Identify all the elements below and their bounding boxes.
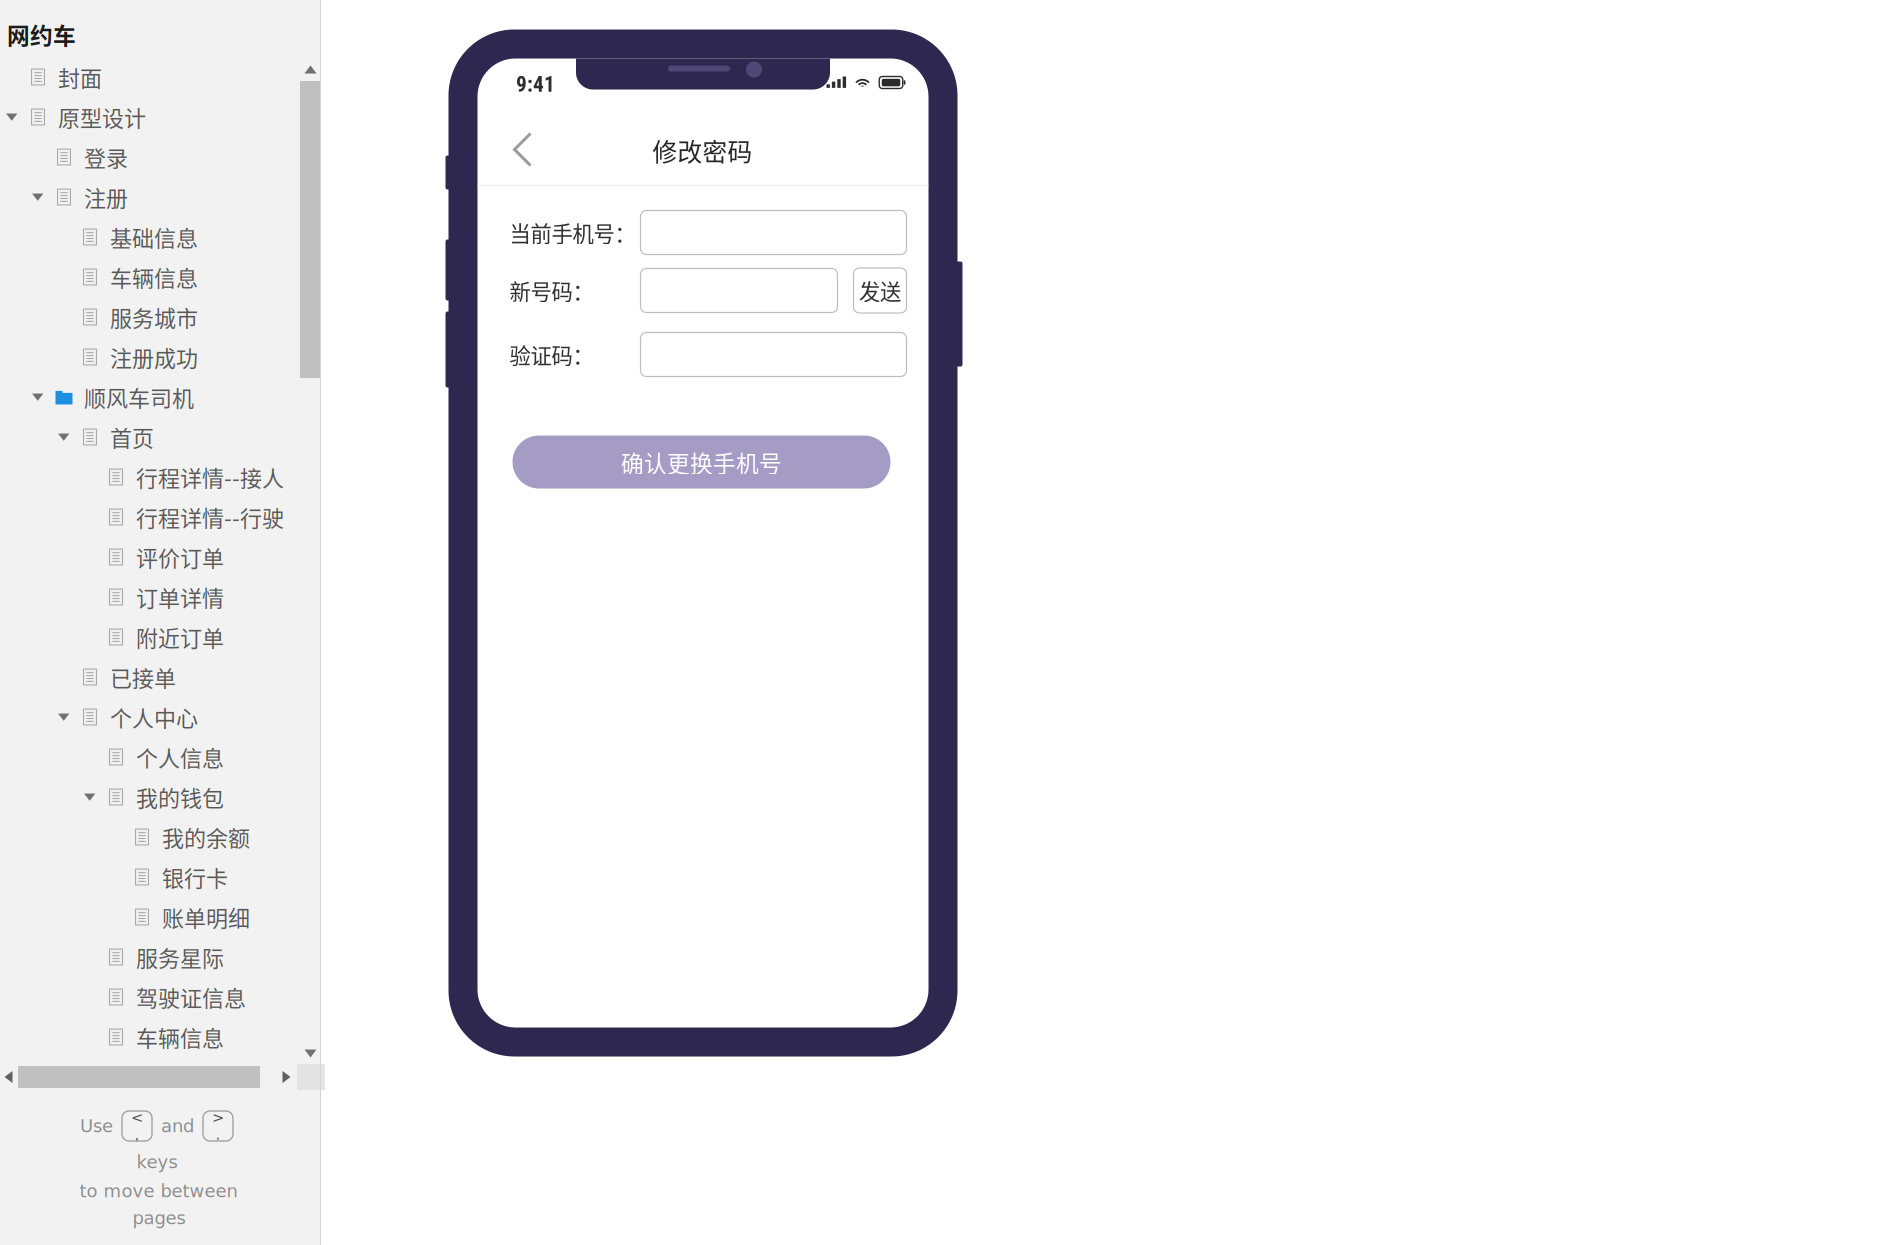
staticText: 我的余额 (162, 821, 250, 853)
staticText: 附近订单 (136, 621, 224, 653)
staticText: to move between (79, 1180, 237, 1201)
staticText: 已接单 (110, 661, 176, 693)
button[interactable]: 原型设计 (0, 97, 296, 137)
staticText: 驾驶证信息 (136, 981, 246, 1013)
staticText: 服务星际 (136, 941, 224, 973)
button[interactable]: 评价订单 (0, 537, 296, 577)
button[interactable]: Back (494, 117, 551, 181)
staticText: 发送 (859, 275, 901, 306)
staticText: 服务城市 (110, 301, 198, 333)
staticText: 注册成功 (110, 341, 198, 373)
staticText: 验证码： (509, 339, 593, 370)
button[interactable]: 我的余额 (0, 817, 296, 857)
button[interactable]: 个人信息 (0, 737, 296, 777)
staticText: 网约车 (7, 18, 76, 51)
button[interactable]: 封面 (0, 57, 296, 97)
button[interactable]: 车辆信息 (0, 257, 296, 297)
button[interactable]: 基础信息 (0, 217, 296, 257)
button[interactable]: 附近订单 (0, 617, 296, 657)
button[interactable]: 注册成功 (0, 337, 296, 377)
staticText: > (212, 1109, 224, 1126)
button[interactable]: 服务星际 (0, 937, 296, 977)
staticText: 车辆信息 (136, 1021, 224, 1053)
staticText: 车辆信息 (110, 261, 198, 293)
staticText: 当前手机号： (509, 217, 635, 248)
staticText: 银行卡 (162, 861, 228, 893)
staticText: 账单明细 (162, 901, 250, 933)
staticText: 登录 (84, 141, 128, 173)
staticText: , (134, 1126, 139, 1143)
staticText: 行程详情--接人 (136, 461, 284, 493)
button[interactable]: Scroll left (0, 1066, 17, 1088)
button[interactable]: 银行卡 (0, 857, 296, 897)
staticText: < (131, 1109, 143, 1126)
button[interactable]: 确认更换手机号 (512, 435, 890, 488)
button[interactable]: 我的钱包 (0, 777, 296, 817)
staticText: 9:41 (516, 72, 555, 97)
button[interactable]: 账单明细 (0, 897, 296, 937)
staticText: 新号码： (509, 275, 593, 306)
button[interactable]: 车辆信息 (0, 1017, 296, 1057)
button[interactable]: 已接单 (0, 657, 296, 697)
button[interactable]: 首页 (0, 417, 296, 457)
button[interactable]: 个人中心 (0, 697, 296, 737)
staticText: 个人中心 (110, 701, 198, 733)
staticText: 基础信息 (110, 221, 198, 253)
button[interactable]: Scroll down (300, 1045, 321, 1062)
staticText: keys (136, 1151, 177, 1172)
button[interactable]: 注册 (0, 177, 296, 217)
button[interactable]: 行程详情--行驶 (0, 497, 296, 537)
button[interactable]: 驾驶证信息 (0, 977, 296, 1017)
staticText: 首页 (110, 421, 154, 453)
staticText: 个人信息 (136, 741, 224, 773)
staticText: 评价订单 (136, 541, 224, 573)
button[interactable]: Scroll up (300, 61, 321, 78)
staticText: 确认更换手机号 (621, 446, 782, 478)
staticText: 订单详情 (136, 581, 224, 613)
button[interactable]: 顺风车司机 (0, 377, 296, 417)
button[interactable]: 登录 (0, 137, 296, 177)
staticText: 原型设计 (58, 101, 146, 133)
staticText: 我的钱包 (136, 781, 224, 813)
staticText: 注册 (84, 181, 128, 213)
staticText: 行程详情--行驶 (136, 501, 284, 533)
staticText: pages (132, 1207, 185, 1228)
button[interactable]: 行程详情--接人 (0, 457, 296, 497)
staticText: . (215, 1126, 220, 1143)
staticText: Use (80, 1115, 113, 1136)
staticText: 修改密码 (652, 133, 752, 168)
button[interactable]: 服务城市 (0, 297, 296, 337)
staticText: and (161, 1115, 194, 1136)
button[interactable]: 发送 (853, 268, 906, 313)
button[interactable]: 订单详情 (0, 577, 296, 617)
staticText: 封面 (58, 61, 102, 93)
button[interactable]: Scroll right (278, 1066, 295, 1088)
staticText: 顺风车司机 (84, 381, 194, 413)
